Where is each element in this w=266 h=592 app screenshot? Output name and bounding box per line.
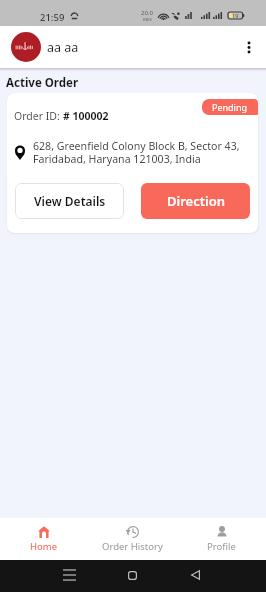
- staticText: # 100002: [63, 109, 109, 123]
- button[interactable]: Order History: [88, 518, 177, 560]
- button[interactable]: Direction: [141, 183, 250, 219]
- staticText: Pending: [212, 101, 248, 113]
- staticText: Active Order: [6, 75, 79, 91]
- staticText: 21:59: [40, 11, 65, 24]
- staticText: View Details: [34, 193, 106, 209]
- staticText: Home: [30, 540, 58, 553]
- button[interactable]: Home: [0, 518, 88, 560]
- staticText: 20.0: [141, 9, 153, 17]
- staticText: Direction: [167, 192, 225, 210]
- button[interactable]: View Details: [15, 183, 124, 219]
- staticText: KB/S: [143, 17, 152, 22]
- button[interactable]: Profile: [177, 518, 266, 560]
- button[interactable]: More options: [229, 27, 266, 67]
- staticText: aa aa: [47, 39, 79, 56]
- staticText: 19: [232, 12, 239, 19]
- button[interactable]: Restaurant logo: [11, 32, 41, 62]
- staticText: Profile: [207, 540, 236, 553]
- staticText: Order ID:: [14, 109, 63, 123]
- staticText: 628, Greenfield Colony Block B, Sector 4…: [33, 139, 254, 166]
- staticText: Order History: [102, 540, 163, 553]
